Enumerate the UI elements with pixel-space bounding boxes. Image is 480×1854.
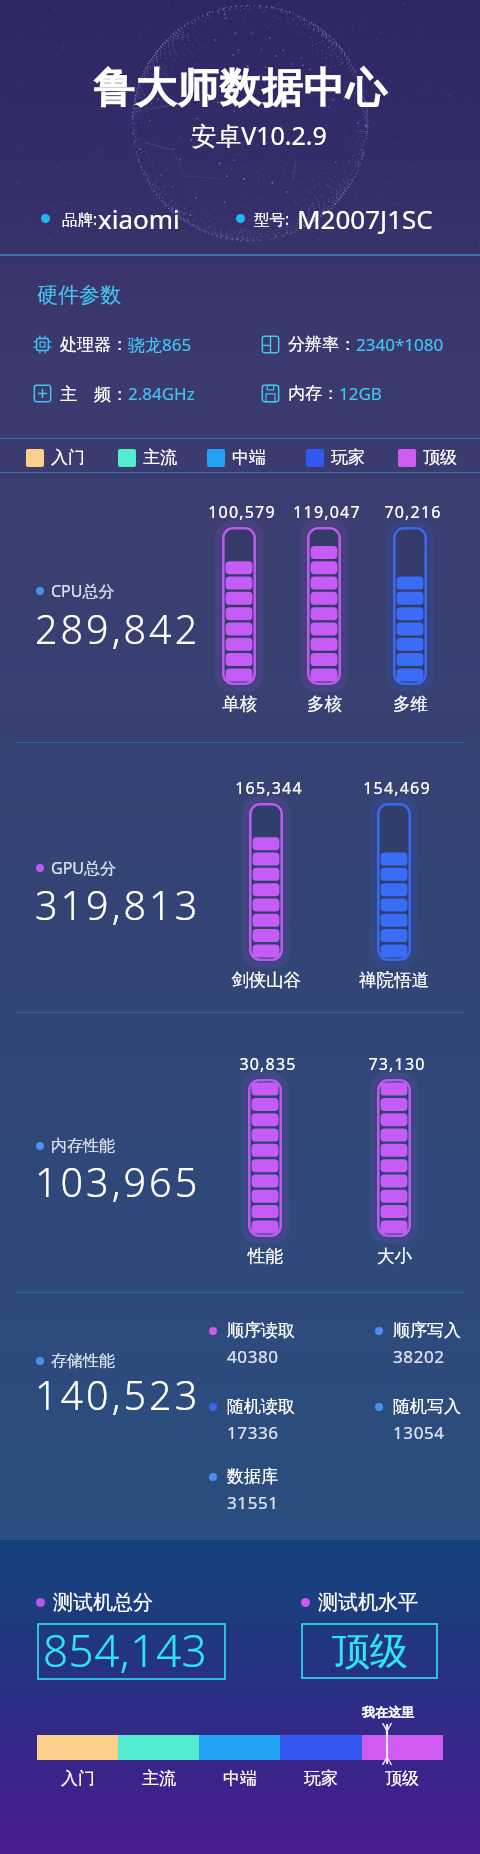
- staticText: 测试机总分: [53, 1590, 153, 1615]
- button[interactable]: 入门: [26, 447, 85, 468]
- staticText: 硬件参数: [37, 282, 121, 308]
- staticText: 内存性能: [51, 1136, 115, 1156]
- button[interactable]: 主流: [118, 447, 177, 468]
- staticText: 大小: [377, 1245, 412, 1267]
- button[interactable]: 顶级: [398, 447, 457, 468]
- button[interactable]: 测试机总分: [36, 1590, 153, 1615]
- staticText: 140,523: [35, 1368, 201, 1422]
- staticText: 2340*1080: [356, 333, 444, 356]
- staticText: 多维: [393, 693, 428, 715]
- staticText: 分辨率：: [288, 334, 356, 355]
- staticText: 31551: [227, 1491, 279, 1514]
- button[interactable]: CPU总分: [36, 580, 115, 602]
- button[interactable]: 存储性能: [36, 1351, 115, 1371]
- button[interactable]: 分辨率：: [261, 333, 444, 356]
- staticText: 70,216: [384, 501, 442, 523]
- staticText: 103,965: [35, 1155, 201, 1209]
- staticText: 顶级: [385, 1768, 419, 1789]
- staticText: 319,813: [35, 878, 201, 932]
- button[interactable]: 854,143: [38, 1624, 225, 1679]
- button[interactable]: 数据库: [209, 1466, 278, 1514]
- button[interactable]: 内存：: [261, 382, 382, 405]
- staticText: 随机读取: [227, 1396, 295, 1417]
- staticText: 剑侠山谷: [231, 969, 301, 991]
- staticText: 30,835: [239, 1053, 297, 1075]
- button[interactable]: 随机写入: [375, 1396, 461, 1444]
- button[interactable]: 品牌:: [41, 201, 180, 236]
- staticText: 玩家: [331, 447, 365, 468]
- staticText: 单核: [222, 693, 257, 715]
- staticText: 12GB: [339, 382, 382, 405]
- button[interactable]: 测试机水平: [301, 1590, 418, 1615]
- button[interactable]: GPU总分: [36, 857, 117, 879]
- staticText: 数据库: [227, 1466, 278, 1487]
- staticText: 多核: [307, 693, 342, 715]
- staticText: 入门: [51, 447, 85, 468]
- button[interactable]: 处理器：: [33, 333, 192, 356]
- staticText: 禅院悟道: [359, 969, 429, 991]
- button[interactable]: 主 频：: [33, 382, 195, 405]
- staticText: 顺序写入: [393, 1320, 461, 1341]
- staticText: 中端: [232, 447, 266, 468]
- button[interactable]: 型号:: [236, 201, 433, 236]
- staticText: 100,579: [208, 501, 276, 523]
- button[interactable]: 内存性能: [36, 1136, 115, 1156]
- staticText: xiaomi: [98, 201, 180, 236]
- staticText: 13054: [393, 1421, 445, 1444]
- staticText: 顺序读取: [227, 1320, 295, 1341]
- staticText: 154,469: [363, 777, 431, 799]
- staticText: 主流: [142, 1768, 176, 1789]
- button[interactable]: 顺序写入: [375, 1320, 461, 1368]
- staticText: 2.84GHz: [128, 382, 195, 405]
- staticText: 安卓V10.2.9: [191, 118, 327, 152]
- staticText: 我在这里: [362, 1704, 414, 1720]
- staticText: 17336: [227, 1421, 279, 1444]
- staticText: CPU总分: [51, 580, 115, 602]
- staticText: 顶级: [423, 447, 457, 468]
- staticText: 型号:: [254, 208, 290, 229]
- staticText: 入门: [61, 1768, 95, 1789]
- staticText: 测试机水平: [318, 1590, 418, 1615]
- staticText: 处理器：: [60, 334, 128, 355]
- staticText: 854,143: [43, 1620, 208, 1675]
- staticText: 性能: [248, 1245, 283, 1267]
- staticText: 顶级: [332, 1627, 408, 1675]
- staticText: M2007J1SC: [297, 201, 433, 236]
- staticText: 存储性能: [51, 1351, 115, 1371]
- staticText: 内存：: [288, 383, 339, 404]
- staticText: 骁龙865: [128, 333, 192, 356]
- staticText: GPU总分: [51, 857, 117, 879]
- staticText: 38202: [393, 1345, 445, 1368]
- staticText: 随机写入: [393, 1396, 461, 1417]
- staticText: 中端: [223, 1768, 257, 1789]
- staticText: 鲁大师数据中心: [93, 63, 387, 115]
- staticText: 40380: [227, 1345, 279, 1368]
- staticText: 289,842: [35, 602, 201, 656]
- button[interactable]: 顶级: [302, 1624, 437, 1678]
- button[interactable]: 随机读取: [209, 1396, 295, 1444]
- button[interactable]: 中端: [207, 447, 266, 468]
- staticText: 品牌:: [62, 208, 98, 229]
- staticText: 165,344: [235, 777, 303, 799]
- button[interactable]: 玩家: [306, 447, 365, 468]
- staticText: 主 频：: [60, 382, 128, 405]
- button[interactable]: 顺序读取: [209, 1320, 295, 1368]
- staticText: 73,130: [368, 1053, 426, 1075]
- staticText: 主流: [143, 447, 177, 468]
- staticText: 玩家: [304, 1768, 338, 1789]
- staticText: 119,047: [293, 501, 361, 523]
